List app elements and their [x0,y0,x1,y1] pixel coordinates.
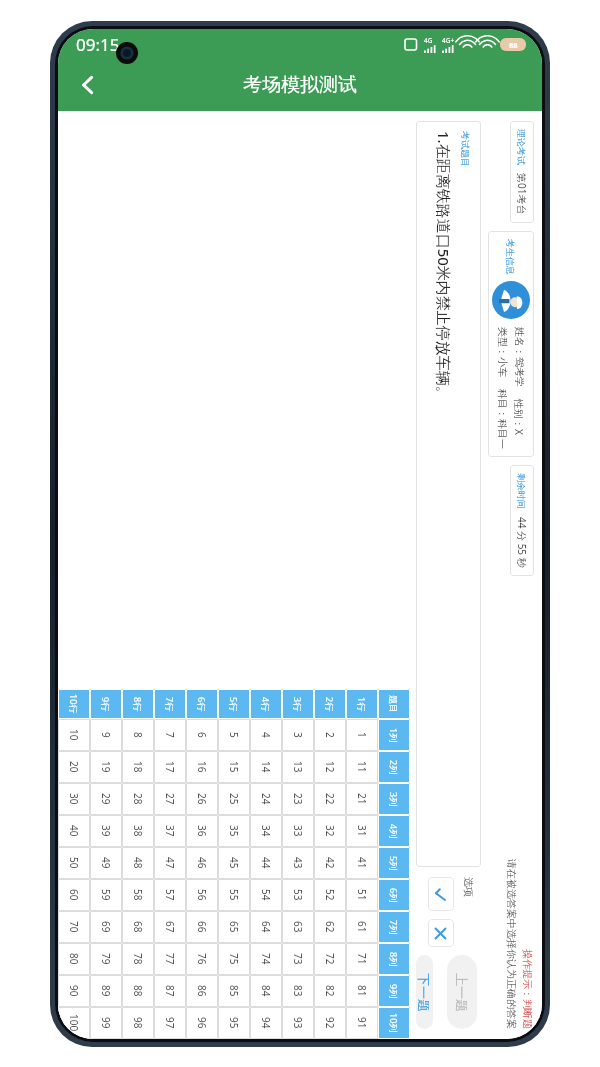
button[interactable]: 40 [58,815,90,847]
button[interactable]: 返回 [66,63,110,107]
button[interactable]: 78 [122,943,154,975]
button[interactable]: 56 [186,879,218,911]
button[interactable]: 39 [90,815,122,847]
button[interactable]: 97 [154,1007,186,1039]
button[interactable]: 24 [250,783,282,815]
button[interactable]: 52 [314,879,346,911]
button[interactable]: 13 [282,751,314,783]
button[interactable]: 9 [90,719,122,751]
button[interactable]: 48 [122,847,154,879]
button[interactable]: 71 [346,943,378,975]
button[interactable]: 23 [282,783,314,815]
button[interactable]: 92 [314,1007,346,1039]
button[interactable]: 32 [314,815,346,847]
button[interactable]: 87 [154,975,186,1007]
button[interactable]: 73 [282,943,314,975]
button[interactable]: 77 [154,943,186,975]
button[interactable]: 99 [90,1007,122,1039]
button[interactable]: 2 [314,719,346,751]
button[interactable]: 85 [218,975,250,1007]
button[interactable]: 42 [314,847,346,879]
button[interactable]: 30 [58,783,90,815]
button[interactable]: 43 [282,847,314,879]
button[interactable]: 82 [314,975,346,1007]
button[interactable]: 70 [58,911,90,943]
button[interactable]: 95 [218,1007,250,1039]
button[interactable]: 20 [58,751,90,783]
button[interactable]: 19 [90,751,122,783]
button[interactable]: 93 [282,1007,314,1039]
button[interactable]: 80 [58,943,90,975]
button[interactable]: 8 [122,719,154,751]
button[interactable]: 91 [346,1007,378,1039]
button[interactable]: 67 [154,911,186,943]
button[interactable]: 90 [58,975,90,1007]
button[interactable]: 65 [218,911,250,943]
button[interactable]: 25 [218,783,250,815]
button[interactable]: 86 [186,975,218,1007]
button[interactable]: 72 [314,943,346,975]
button[interactable]: 54 [250,879,282,911]
button[interactable]: 16 [186,751,218,783]
button[interactable]: 1 [346,719,378,751]
button[interactable]: 35 [218,815,250,847]
button[interactable]: 60 [58,879,90,911]
button[interactable]: 37 [154,815,186,847]
button[interactable]: 44 [250,847,282,879]
button[interactable]: 3 [282,719,314,751]
button[interactable]: 55 [218,879,250,911]
button[interactable]: 错误 [428,919,454,947]
button[interactable]: 下一题 [416,955,433,1029]
button[interactable]: 69 [90,911,122,943]
button[interactable]: 34 [250,815,282,847]
button[interactable]: 15 [218,751,250,783]
button[interactable]: 36 [186,815,218,847]
button[interactable]: 74 [250,943,282,975]
button[interactable]: 83 [282,975,314,1007]
button[interactable]: 38 [122,815,154,847]
button[interactable]: 59 [90,879,122,911]
button[interactable]: 12 [314,751,346,783]
button[interactable]: 88 [122,975,154,1007]
button[interactable]: 上一题 [447,955,477,1029]
button[interactable]: 58 [122,879,154,911]
button[interactable]: 6 [186,719,218,751]
button[interactable]: 89 [90,975,122,1007]
button[interactable]: 11 [346,751,378,783]
button[interactable]: 29 [90,783,122,815]
button[interactable]: 41 [346,847,378,879]
button[interactable]: 66 [186,911,218,943]
button[interactable]: 79 [90,943,122,975]
button[interactable]: 17 [154,751,186,783]
button[interactable]: 18 [122,751,154,783]
button[interactable]: 28 [122,783,154,815]
button[interactable]: 76 [186,943,218,975]
button[interactable]: 62 [314,911,346,943]
button[interactable]: 49 [90,847,122,879]
button[interactable]: 31 [346,815,378,847]
button[interactable]: 81 [346,975,378,1007]
button[interactable]: 26 [186,783,218,815]
button[interactable]: 14 [250,751,282,783]
button[interactable]: 61 [346,911,378,943]
button[interactable]: 5 [218,719,250,751]
button[interactable]: 64 [250,911,282,943]
button[interactable]: 100 [58,1007,90,1039]
button[interactable]: 33 [282,815,314,847]
button[interactable]: 75 [218,943,250,975]
button[interactable]: 21 [346,783,378,815]
button[interactable]: 47 [154,847,186,879]
button[interactable]: 10 [58,719,90,751]
button[interactable]: 7 [154,719,186,751]
button[interactable]: 96 [186,1007,218,1039]
button[interactable]: 63 [282,911,314,943]
button[interactable]: 84 [250,975,282,1007]
button[interactable]: 50 [58,847,90,879]
button[interactable]: 57 [154,879,186,911]
button[interactable]: 68 [122,911,154,943]
button[interactable]: 53 [282,879,314,911]
button[interactable]: 46 [186,847,218,879]
button[interactable]: 正确 [428,877,454,911]
button[interactable]: 22 [314,783,346,815]
button[interactable]: 45 [218,847,250,879]
